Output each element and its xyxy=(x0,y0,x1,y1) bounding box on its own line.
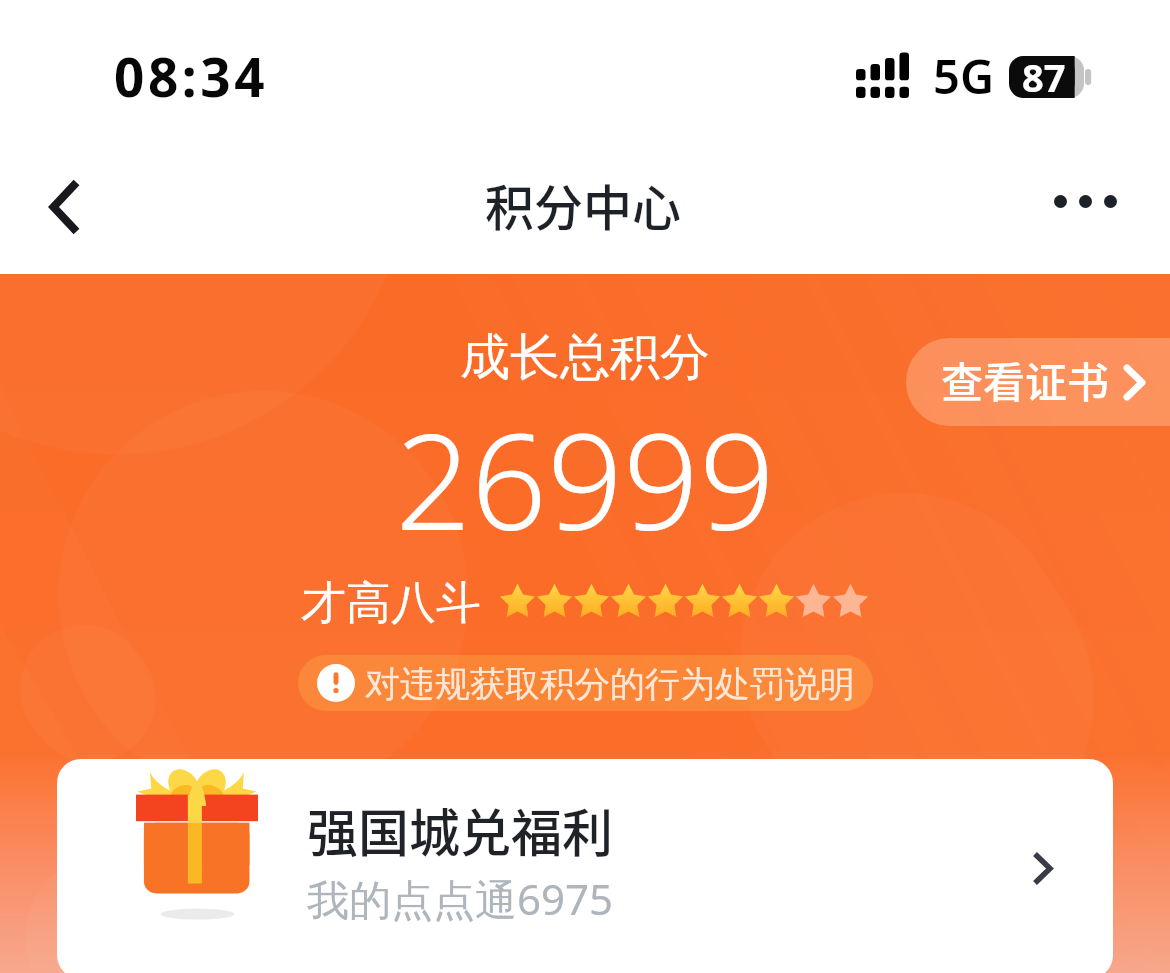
button[interactable]: 对违规获取积分的行为处罚说明 xyxy=(298,655,873,711)
button[interactable]: Back xyxy=(23,165,107,249)
staticText: 查看证书 xyxy=(941,349,1110,410)
staticText: 26999 xyxy=(0,388,1170,569)
staticText: 才高八斗 xyxy=(301,575,481,632)
staticText: 08:34 xyxy=(114,40,269,112)
button[interactable]: 查看证书 xyxy=(906,338,1170,426)
staticText: 对违规获取积分的行为处罚说明 xyxy=(365,662,855,706)
button[interactable]: 强国城兑福利 xyxy=(57,759,1113,973)
staticText: 我的点点通6975 xyxy=(307,870,614,927)
staticText: 成长总积分 xyxy=(0,326,1170,389)
button[interactable]: More options xyxy=(1043,159,1127,243)
staticText: 5G xyxy=(933,44,995,108)
staticText: 强国城兑福利 xyxy=(307,793,614,867)
staticText: 积分中心 xyxy=(485,169,682,240)
staticText: 87 xyxy=(1022,51,1066,103)
